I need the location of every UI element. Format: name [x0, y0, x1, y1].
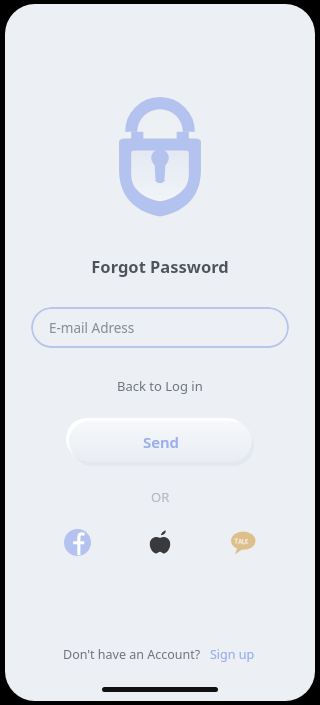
button[interactable]: Sign in with Kakao Talk: [226, 525, 260, 559]
staticText: Forgot Password: [91, 255, 229, 277]
button[interactable]: Send: [69, 421, 252, 462]
staticText: Don't have an Account?: [63, 646, 201, 663]
button[interactable]: E-mail Adress: [31, 307, 289, 348]
staticText: OR: [151, 488, 170, 506]
button[interactable]: Sign up: [208, 644, 257, 665]
button[interactable]: Back to Log in: [109, 374, 211, 398]
staticText: Send: [143, 432, 179, 452]
staticText: Sign up: [210, 646, 255, 663]
staticText: Back to Log in: [117, 377, 203, 395]
button[interactable]: Sign in with Facebook: [60, 525, 94, 559]
staticText: E-mail Adress: [49, 319, 135, 337]
button[interactable]: Sign in with Apple: [143, 525, 177, 559]
